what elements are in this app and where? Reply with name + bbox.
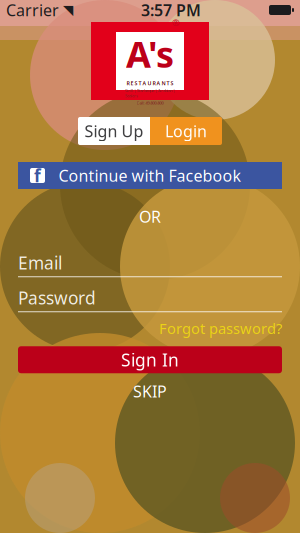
staticText: Carrier [6, 0, 59, 21]
button[interactable]: Forgot password? [0, 319, 300, 337]
staticText: OR [139, 206, 161, 227]
button[interactable]: Sign In [18, 346, 282, 373]
staticText: A's [126, 30, 174, 78]
staticText: Sign Up [84, 120, 143, 142]
staticText: Password [18, 286, 96, 309]
staticText: Forgot password? [159, 318, 282, 338]
button[interactable]: Sign Up [78, 117, 150, 145]
staticText: ® [172, 16, 180, 29]
staticText: f [34, 164, 41, 187]
staticText: Email [18, 251, 62, 274]
staticText: Continue with Facebook [58, 165, 241, 186]
staticText: Login [165, 120, 207, 142]
staticText: Grill | Barbeque | Arabian | Sealers [125, 88, 175, 98]
staticText: Call: 49-800-800 [136, 100, 163, 106]
button[interactable]: SKIP [133, 382, 167, 400]
staticText: Sign In [121, 348, 179, 371]
button[interactable]: f [18, 162, 282, 189]
staticText: ◥ [63, 2, 73, 17]
staticText: 3:57 PM [141, 0, 201, 21]
staticText: SKIP [133, 381, 167, 402]
button[interactable]: Login [150, 117, 222, 145]
staticText: R E S T A U R A N T S [126, 80, 173, 87]
